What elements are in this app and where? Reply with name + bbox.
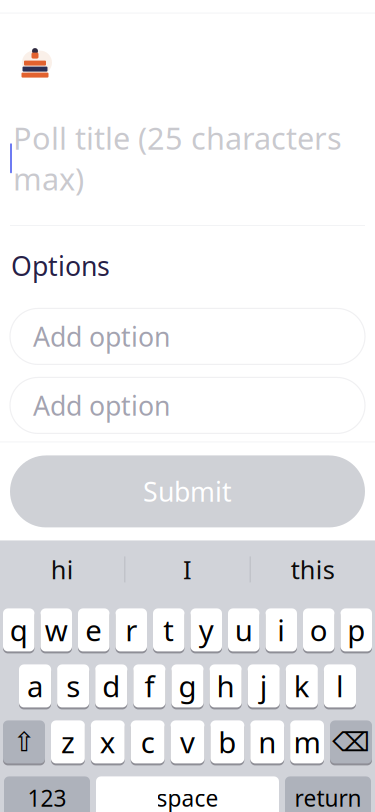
- button[interactable]: Submit: [0, 442, 375, 540]
- button[interactable]: d: [95, 664, 127, 709]
- staticText: m: [294, 722, 321, 761]
- staticText: n: [258, 722, 276, 761]
- button[interactable]: i: [265, 608, 297, 653]
- staticText: Options: [11, 248, 110, 283]
- staticText: d: [102, 666, 120, 705]
- staticText: t: [163, 610, 174, 649]
- button[interactable]: l: [324, 664, 356, 709]
- button[interactable]: return: [285, 776, 371, 812]
- staticText: Poll title (25 characters max): [13, 118, 342, 199]
- staticText: g: [178, 666, 196, 705]
- staticText: I: [183, 553, 192, 586]
- button[interactable]: this: [251, 547, 375, 591]
- button[interactable]: g: [171, 664, 203, 709]
- staticText: q: [10, 610, 28, 649]
- staticText: z: [61, 722, 75, 761]
- staticText: y: [199, 610, 214, 649]
- button[interactable]: c: [131, 720, 165, 765]
- staticText: l: [336, 666, 344, 705]
- button[interactable]: n: [250, 720, 284, 765]
- staticText: return: [294, 783, 361, 812]
- button[interactable]: m: [290, 720, 324, 765]
- button[interactable]: b: [210, 720, 244, 765]
- button[interactable]: Delete: [330, 720, 372, 765]
- button[interactable]: a: [19, 664, 51, 709]
- button[interactable]: o: [303, 608, 334, 653]
- staticText: j: [260, 666, 268, 705]
- staticText: ⌫: [332, 727, 370, 757]
- button[interactable]: p: [340, 608, 372, 653]
- staticText: 123: [27, 783, 66, 812]
- staticText: b: [218, 722, 236, 761]
- staticText: ⇧: [13, 727, 35, 757]
- button[interactable]: 123: [4, 776, 90, 812]
- staticText: Add option: [33, 388, 170, 423]
- button[interactable]: Shift: [3, 720, 45, 765]
- staticText: o: [310, 610, 328, 649]
- staticText: r: [125, 610, 137, 649]
- button[interactable]: hi: [0, 547, 124, 591]
- staticText: p: [347, 610, 365, 649]
- button[interactable]: t: [153, 608, 184, 653]
- button[interactable]: e: [78, 608, 109, 653]
- staticText: space: [156, 783, 218, 812]
- button[interactable]: f: [133, 664, 165, 709]
- staticText: u: [235, 610, 253, 649]
- staticText: e: [85, 610, 102, 649]
- staticText: h: [217, 666, 235, 705]
- button[interactable]: k: [286, 664, 318, 709]
- staticText: w: [45, 610, 68, 649]
- button[interactable]: u: [228, 608, 259, 653]
- button[interactable]: y: [190, 608, 222, 653]
- staticText: i: [277, 610, 285, 649]
- staticText: k: [294, 666, 310, 705]
- staticText: hi: [51, 553, 74, 586]
- button[interactable]: x: [91, 720, 125, 765]
- staticText: f: [144, 666, 154, 705]
- button[interactable]: s: [57, 664, 89, 709]
- staticText: c: [141, 722, 155, 761]
- button[interactable]: q: [3, 608, 34, 653]
- staticText: x: [100, 722, 116, 761]
- button[interactable]: w: [40, 608, 72, 653]
- button[interactable]: r: [115, 608, 147, 653]
- button[interactable]: Add option: [0, 308, 375, 364]
- button[interactable]: I: [125, 547, 250, 591]
- staticText: v: [180, 722, 195, 761]
- staticText: Add option: [33, 319, 170, 354]
- button[interactable]: j: [248, 664, 280, 709]
- staticText: Submit: [143, 474, 232, 509]
- button[interactable]: v: [171, 720, 204, 765]
- button[interactable]: Add option: [0, 377, 375, 433]
- staticText: this: [291, 553, 335, 586]
- button[interactable]: z: [51, 720, 85, 765]
- staticText: s: [66, 666, 80, 705]
- button[interactable]: space: [96, 776, 279, 812]
- button[interactable]: h: [210, 664, 242, 709]
- staticText: a: [27, 666, 43, 705]
